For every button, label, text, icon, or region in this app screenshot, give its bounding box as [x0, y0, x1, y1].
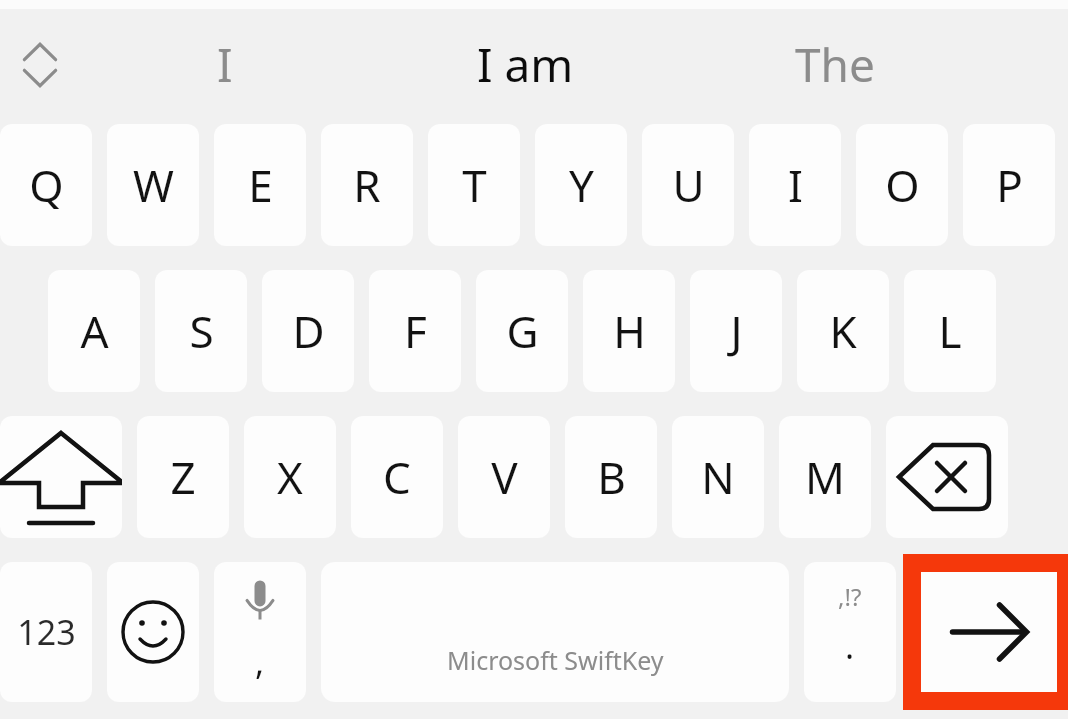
button[interactable]: I — [110, 9, 340, 120]
staticText: E — [248, 155, 273, 215]
button[interactable]: Q — [0, 124, 92, 246]
staticText: C — [383, 447, 411, 507]
staticText: I am — [477, 33, 574, 96]
staticText: H — [613, 301, 646, 361]
staticText: R — [353, 155, 381, 215]
staticText: U — [672, 155, 705, 215]
button[interactable]: G — [476, 270, 568, 392]
button[interactable]: E — [214, 124, 306, 246]
button[interactable]: T — [428, 124, 520, 246]
staticText: W — [133, 155, 174, 215]
button[interactable]: Enter — [911, 558, 1068, 706]
staticText: K — [829, 301, 857, 361]
staticText: 123 — [17, 609, 76, 655]
staticText: P — [996, 155, 1023, 215]
button[interactable]: F — [369, 270, 461, 392]
button[interactable]: Microsoft SwiftKey — [321, 562, 789, 702]
button[interactable]: V — [458, 416, 550, 538]
button[interactable]: K — [797, 270, 889, 392]
button[interactable]: O — [856, 124, 948, 246]
button[interactable]: Expand toolbar — [6, 31, 74, 99]
staticText: The — [795, 33, 875, 96]
button[interactable]: Emoji — [107, 562, 199, 702]
button[interactable]: C — [351, 416, 443, 538]
button[interactable]: Shift — [0, 416, 122, 538]
staticText: , — [255, 639, 265, 685]
staticText: M — [805, 447, 845, 507]
button[interactable]: X — [244, 416, 336, 538]
staticText: F — [404, 301, 427, 361]
staticText: T — [462, 155, 487, 215]
staticText: J — [730, 301, 743, 361]
button[interactable]: S — [155, 270, 247, 392]
staticText: B — [597, 447, 626, 507]
button[interactable]: A — [48, 270, 140, 392]
button[interactable]: Backspace — [886, 416, 1008, 538]
button[interactable]: Punctuation, period — [804, 562, 896, 702]
button[interactable]: H — [583, 270, 675, 392]
button[interactable]: Voice input, comma — [214, 562, 306, 702]
staticText: Y — [569, 155, 594, 215]
staticText: Q — [29, 155, 64, 215]
button[interactable]: M — [779, 416, 871, 538]
staticText: G — [506, 301, 539, 361]
staticText: D — [292, 301, 325, 361]
staticText: . — [845, 623, 855, 669]
button[interactable]: 123 — [0, 562, 92, 702]
staticText: ,!? — [838, 580, 862, 613]
button[interactable]: P — [963, 124, 1055, 246]
button[interactable]: The — [720, 9, 950, 120]
button[interactable]: B — [565, 416, 657, 538]
staticText: O — [885, 155, 920, 215]
button[interactable]: Y — [535, 124, 627, 246]
button[interactable]: D — [262, 270, 354, 392]
button[interactable]: U — [642, 124, 734, 246]
button[interactable]: R — [321, 124, 413, 246]
staticText: I — [217, 33, 233, 96]
staticText: Z — [170, 447, 196, 507]
button[interactable]: I am — [400, 9, 650, 120]
staticText: V — [491, 447, 518, 507]
staticText: A — [80, 301, 109, 361]
button[interactable]: N — [672, 416, 764, 538]
staticText: X — [277, 447, 303, 507]
staticText: Microsoft SwiftKey — [447, 643, 664, 677]
button[interactable]: L — [904, 270, 996, 392]
button[interactable]: I — [749, 124, 841, 246]
button[interactable]: J — [690, 270, 782, 392]
button[interactable]: Z — [137, 416, 229, 538]
staticText: N — [701, 447, 735, 507]
staticText: I — [788, 155, 803, 215]
staticText: L — [938, 301, 962, 361]
staticText: S — [189, 301, 214, 361]
button[interactable]: W — [107, 124, 199, 246]
